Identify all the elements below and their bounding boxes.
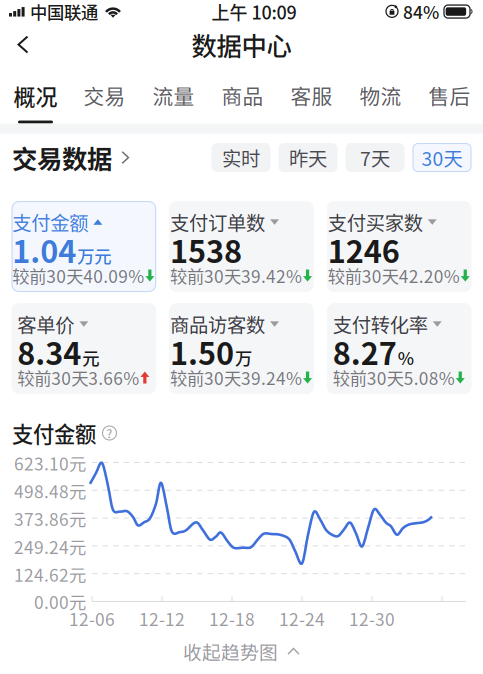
- staticText: 客单价: [17, 310, 74, 338]
- button[interactable]: 商品访客数: [170, 304, 313, 394]
- button[interactable]: 交易: [70, 64, 139, 124]
- button[interactable]: 流量: [139, 64, 208, 124]
- staticText: 概况: [13, 80, 57, 111]
- staticText: 售后: [428, 81, 470, 110]
- staticText: 物流: [359, 81, 401, 110]
- staticText: 流量: [152, 81, 194, 110]
- staticText: 1.04: [12, 227, 76, 272]
- staticText: 较前30天42.20%: [328, 263, 460, 288]
- staticText: 12-24: [279, 606, 325, 631]
- staticText: 12-12: [139, 606, 185, 631]
- staticText: 昨天: [289, 144, 327, 172]
- staticText: 124.62元: [14, 562, 86, 587]
- staticText: 8.34: [17, 329, 81, 374]
- staticText: 实时: [222, 144, 260, 172]
- staticText: %: [398, 345, 414, 370]
- button[interactable]: 支付订单数: [170, 202, 313, 292]
- staticText: 商品: [221, 81, 263, 110]
- staticText: 支付转化率: [333, 310, 428, 338]
- button[interactable]: 7天: [346, 144, 404, 172]
- staticText: 12-06: [69, 606, 115, 631]
- button[interactable]: 支付金额: [12, 202, 156, 292]
- staticText: 较前30天5.08%: [333, 365, 455, 390]
- staticText: 1.50: [170, 329, 234, 374]
- button[interactable]: 30天: [413, 144, 471, 172]
- staticText: 8.27: [333, 329, 397, 374]
- staticText: 373.86元: [14, 506, 86, 531]
- button[interactable]: 物流: [346, 64, 415, 124]
- staticText: 支付订单数: [170, 208, 265, 236]
- button[interactable]: 售后: [415, 64, 483, 124]
- staticText: 上午 10:09: [211, 0, 296, 25]
- staticText: 7天: [360, 144, 390, 172]
- button[interactable]: Back: [0, 26, 46, 64]
- staticText: 较前30天40.09%: [12, 263, 144, 288]
- button[interactable]: 概况: [1, 64, 70, 124]
- staticText: 万元: [77, 243, 111, 268]
- staticText: 中国联通: [30, 0, 98, 24]
- staticText: 支付金额: [12, 418, 96, 448]
- staticText: 12-30: [349, 606, 395, 631]
- button[interactable]: 收起趋势图: [183, 636, 300, 666]
- button[interactable]: 支付转化率: [327, 304, 471, 394]
- staticText: 支付买家数: [328, 208, 423, 236]
- staticText: 249.24元: [14, 534, 86, 559]
- staticText: 84%: [403, 0, 439, 24]
- staticText: 623.10元: [14, 450, 86, 475]
- staticText: 498.48元: [14, 478, 86, 503]
- staticText: 30天: [421, 144, 462, 172]
- button[interactable]: 昨天: [279, 144, 337, 172]
- staticText: 交易: [83, 81, 125, 110]
- staticText: 客服: [290, 81, 332, 110]
- staticText: 万: [235, 345, 252, 370]
- staticText: 交易数据: [12, 139, 112, 176]
- staticText: 1246: [328, 227, 400, 272]
- button[interactable]: 实时: [212, 144, 270, 172]
- staticText: 12-18: [209, 606, 255, 631]
- staticText: 0.00元: [34, 589, 86, 614]
- staticText: 商品访客数: [170, 310, 265, 338]
- staticText: 元: [82, 345, 99, 370]
- staticText: 1538: [170, 227, 242, 272]
- button[interactable]: 客服: [277, 64, 346, 124]
- staticText: 数据中心: [191, 26, 291, 63]
- staticText: 支付金额: [12, 208, 88, 236]
- staticText: 较前30天3.66%: [17, 365, 139, 390]
- button[interactable]: 商品: [208, 64, 277, 124]
- staticText: 较前30天39.24%: [170, 365, 302, 390]
- staticText: ?: [106, 424, 112, 442]
- button[interactable]: 客单价: [12, 304, 156, 394]
- button[interactable]: 交易数据: [12, 140, 130, 176]
- staticText: 较前30天39.42%: [170, 263, 302, 288]
- staticText: 收起趋势图: [183, 638, 278, 665]
- button[interactable]: 支付买家数: [327, 202, 471, 292]
